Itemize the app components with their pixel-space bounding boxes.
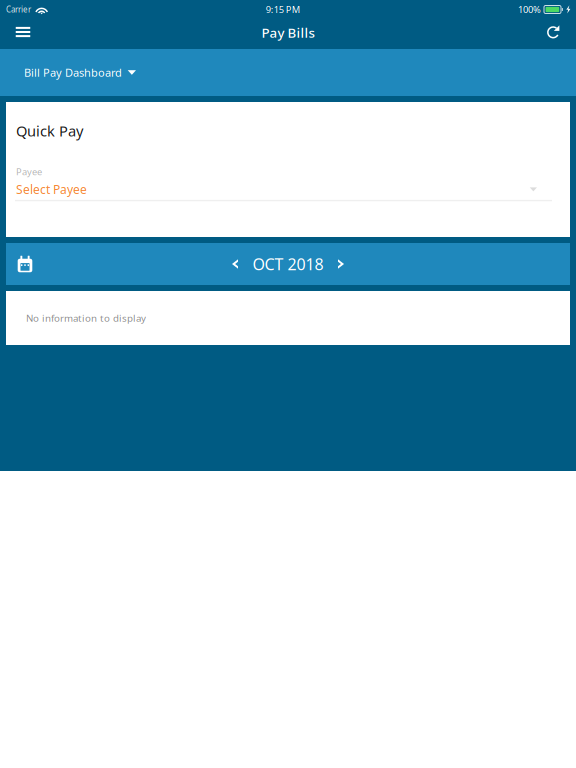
staticText: OCT 2018 [252,253,323,275]
staticText: Bill Pay Dashboard [24,65,122,80]
staticText: 9:15 PM [266,3,300,16]
button[interactable]: Calendar [8,243,42,285]
staticText: Select Payee [16,181,87,197]
staticText: Carrier [6,4,31,15]
button[interactable]: Refresh [535,19,573,49]
staticText: Pay Bills [261,24,314,41]
staticText: 100% [518,3,541,16]
button[interactable]: Select Payee [6,183,570,196]
staticText: Payee [16,165,42,178]
button[interactable]: Menu [4,19,42,49]
button[interactable]: Bill Pay Dashboard [0,49,150,96]
staticText: No information to display [26,311,146,325]
button[interactable]: Previous month [227,251,243,277]
button[interactable]: Next month [333,251,349,277]
staticText: Quick Pay [16,121,83,140]
